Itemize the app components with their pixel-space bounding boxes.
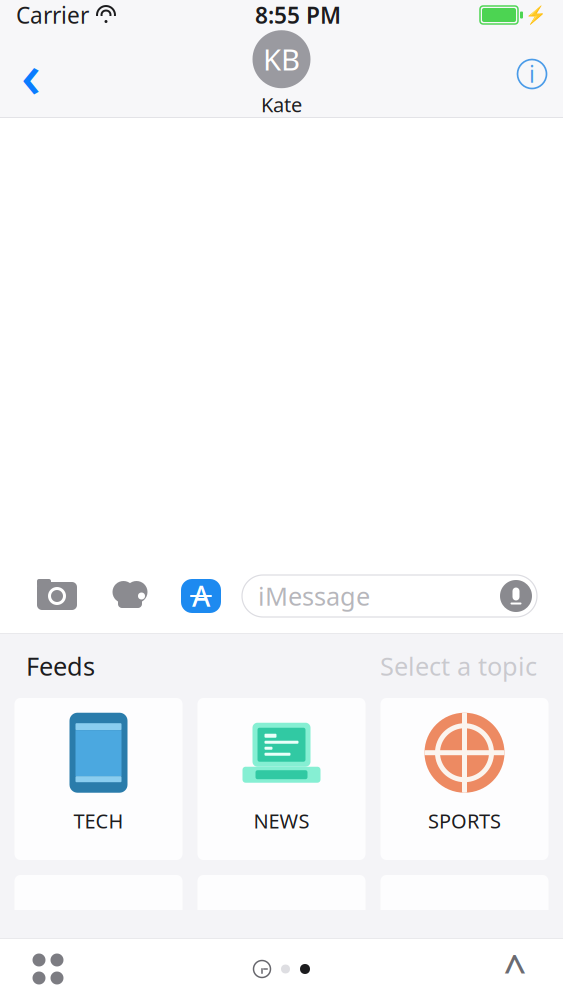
staticText: NEWS [253,807,309,834]
staticText: Select a topic [380,649,537,683]
button[interactable]: Expand [485,941,545,997]
staticText: ^ [503,942,526,995]
button[interactable]: Fun [380,875,548,1000]
button[interactable]: Apps [18,941,78,997]
button[interactable]: TECH [14,698,182,860]
staticText: Kate [261,91,302,118]
staticText: i [529,59,535,89]
button[interactable]: SPORTS [380,698,548,860]
staticText: TECH [73,807,123,834]
button[interactable]: Select a topic [380,649,537,683]
button[interactable]: iMessage [242,575,537,617]
staticText: KB [263,40,300,79]
button[interactable]: Back [4,43,58,105]
button[interactable]: Trending [197,875,365,1000]
button[interactable]: Food [14,875,182,1000]
staticText: 8:55 PM [255,0,341,30]
staticText: iMessage [258,579,370,613]
staticText: Feeds [26,649,95,683]
staticText: Carrier [16,0,89,30]
button[interactable]: App Store [180,579,222,613]
staticText: A [192,577,210,615]
button[interactable]: Digital Touch [110,579,150,613]
button[interactable]: Info [505,43,559,105]
staticText: ‹ [21,33,41,115]
button[interactable]: Recents [253,960,271,978]
button[interactable]: NEWS [197,698,365,860]
button[interactable]: Camera [36,579,78,613]
staticText: SPORTS [428,807,501,834]
staticText: ⚡ [525,5,547,25]
